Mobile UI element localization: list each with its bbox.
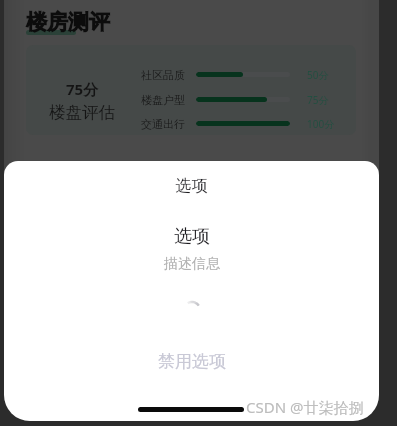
staticText: 楼盘户型	[141, 93, 185, 107]
staticText: 100分	[307, 117, 335, 131]
staticText: 交通出行	[141, 117, 185, 131]
staticText: 75分	[307, 93, 329, 107]
staticText: 选项	[174, 225, 210, 248]
button[interactable]: 选项	[4, 225, 379, 273]
staticText: 楼盘评估	[49, 102, 115, 123]
staticText: 社区品质	[141, 68, 185, 82]
staticText: 禁用选项	[158, 351, 226, 372]
staticText: 描述信息	[164, 255, 220, 273]
button[interactable]: 禁用选项	[4, 351, 379, 372]
staticText: CSDN @廿柒拾捌	[246, 397, 364, 417]
staticText: 选项	[4, 176, 379, 196]
staticText: 75分	[66, 79, 99, 99]
staticText: 50分	[307, 68, 329, 82]
staticText: 楼房测评	[26, 9, 110, 35]
